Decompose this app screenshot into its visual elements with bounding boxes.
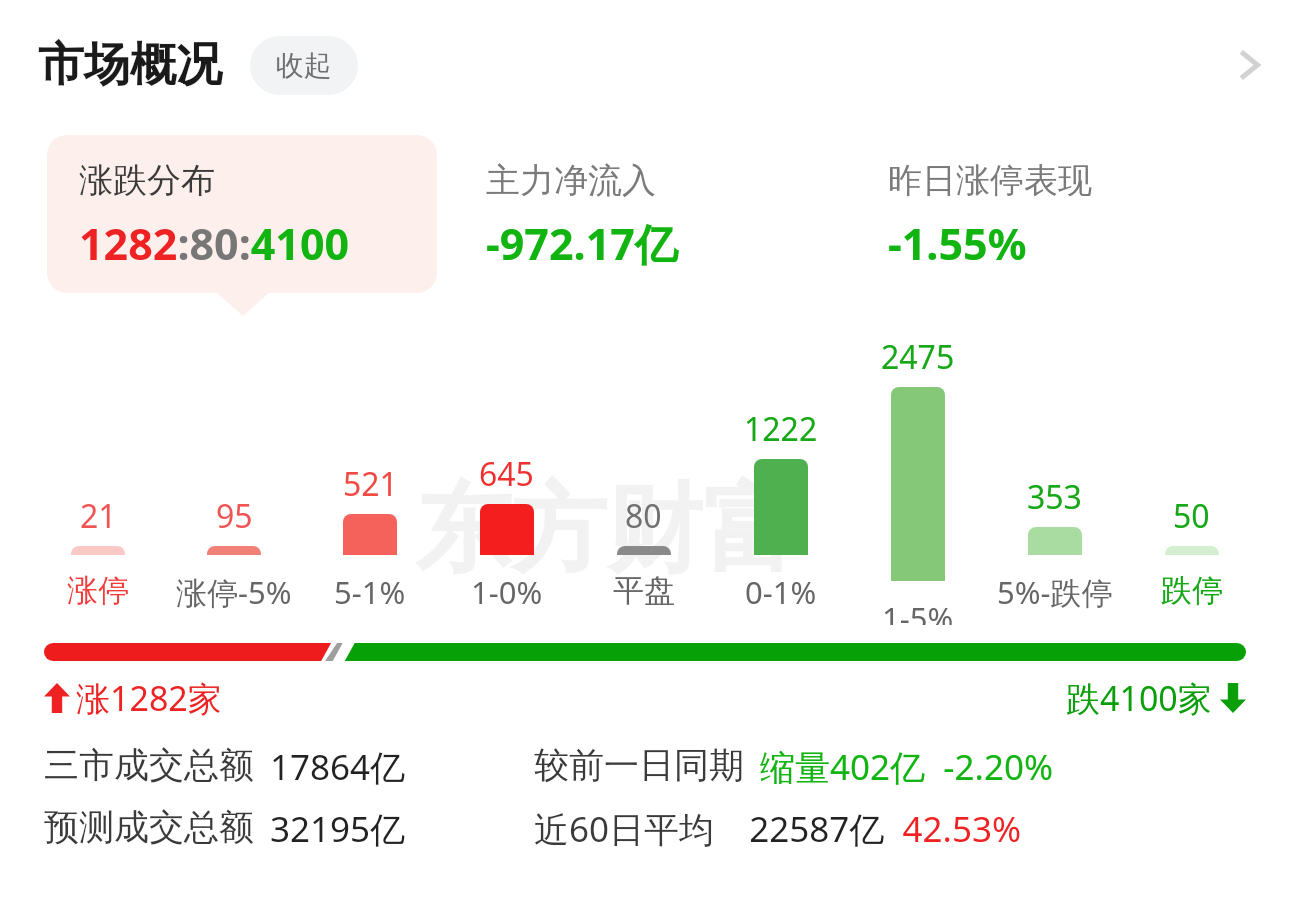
staticText: 2475 — [881, 335, 955, 379]
staticText: 1282:80:4100 — [79, 214, 350, 273]
button[interactable]: 主力净流入 — [454, 135, 840, 293]
staticText: 涨停-5% — [176, 571, 292, 613]
staticText: 预测成交总额 — [44, 805, 254, 849]
staticText: 521 — [343, 462, 398, 506]
staticText: 353 — [1027, 475, 1082, 519]
staticText: 跌停 — [1161, 571, 1223, 610]
staticText: 1-5% — [882, 597, 954, 625]
staticText: 1-0% — [471, 571, 543, 613]
staticText: 5%-跌停 — [997, 571, 1113, 613]
staticText: 50 — [1173, 494, 1210, 538]
staticText: 跌4100家 — [1066, 675, 1212, 721]
staticText: 平盘 — [613, 571, 675, 610]
staticText: 1222 — [744, 407, 818, 451]
button[interactable]: 收起 — [250, 36, 358, 95]
staticText: 32195亿 — [270, 805, 406, 853]
staticText: 昨日涨停表现 — [888, 159, 1092, 202]
staticText: 95 — [216, 494, 253, 538]
staticText: -972.17亿 — [486, 214, 678, 273]
staticText: 22587亿 42.53% — [731, 805, 1022, 853]
staticText: 市场概况 — [38, 36, 222, 94]
staticText: 近60日平均 — [534, 805, 715, 853]
staticText: -1.55% — [888, 214, 1027, 273]
button[interactable]: 涨跌分布 — [47, 135, 437, 293]
staticText: 收起 — [276, 48, 332, 83]
staticText: 涨跌分布 — [79, 159, 215, 202]
staticText: 较前一日同期 — [534, 743, 744, 787]
staticText: 涨停 — [67, 571, 129, 610]
staticText: 645 — [479, 452, 534, 496]
staticText: 涨1282家 — [76, 675, 222, 721]
staticText: 主力净流入 — [486, 159, 656, 202]
staticText: 0-1% — [745, 571, 817, 613]
staticText: 21 — [80, 494, 117, 538]
staticText: 东方财富 — [415, 470, 799, 591]
button[interactable]: More — [1210, 25, 1290, 105]
button[interactable]: 昨日涨停表现 — [856, 135, 1242, 293]
staticText: 5-1% — [334, 571, 406, 613]
staticText: 缩量402亿 -2.20% — [760, 743, 1054, 791]
staticText: 17864亿 — [270, 743, 406, 791]
staticText: 80 — [625, 494, 662, 538]
staticText: 三市成交总额 — [44, 743, 254, 787]
